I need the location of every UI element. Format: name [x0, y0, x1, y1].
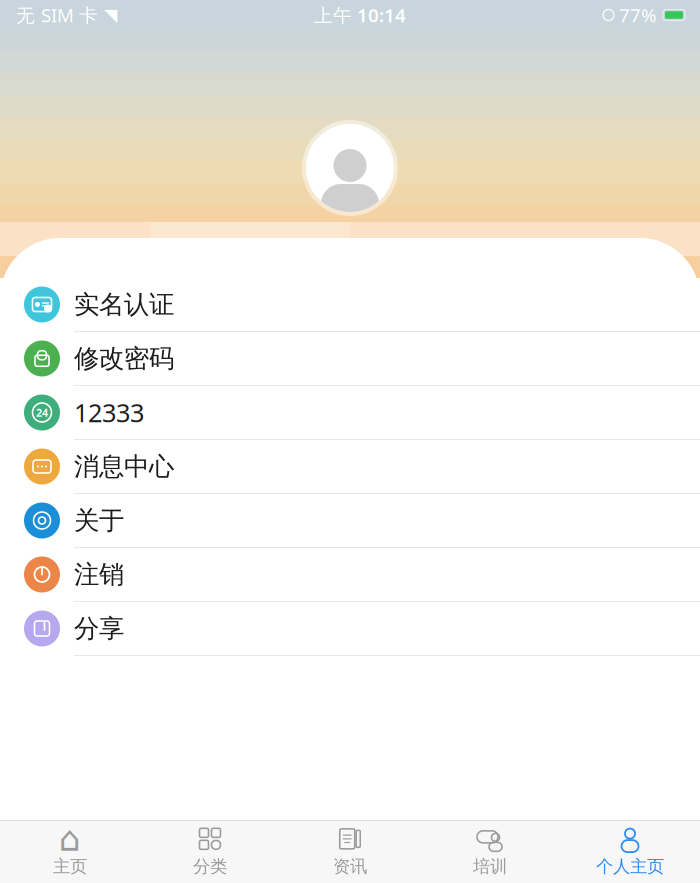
button[interactable]: 个人主页: [560, 821, 700, 883]
staticText: 实名认证: [74, 289, 174, 320]
staticText: 无 SIM 卡: [16, 3, 98, 27]
button[interactable]: 分类: [140, 821, 280, 883]
staticText: 上午 10:14: [314, 3, 406, 27]
button[interactable]: 实名认证: [0, 278, 700, 332]
staticText: ⌂: [59, 819, 81, 858]
staticText: ◥: [104, 5, 117, 25]
button[interactable]: 分享: [0, 602, 700, 656]
staticText: 分享: [74, 613, 124, 644]
staticText: 注销: [74, 559, 124, 590]
staticText: 个人主页: [596, 856, 664, 877]
staticText: 修改密码: [74, 343, 174, 374]
button[interactable]: 培训: [420, 821, 560, 883]
staticText: 资讯: [333, 856, 367, 877]
staticText: 消息中心: [74, 451, 174, 482]
staticText: 关于: [74, 505, 124, 536]
button[interactable]: 资讯: [280, 821, 420, 883]
button[interactable]: 关于: [0, 494, 700, 548]
button[interactable]: 修改密码: [0, 332, 700, 386]
staticText: 分类: [193, 856, 227, 877]
staticText: 77%: [619, 3, 657, 27]
staticText: 12333: [74, 396, 144, 429]
staticText: 培训: [473, 856, 507, 877]
staticText: 24: [36, 405, 48, 420]
button[interactable]: ⌂: [0, 821, 140, 883]
staticText: 主页: [53, 856, 87, 877]
button[interactable]: 24: [0, 386, 700, 440]
button[interactable]: 消息中心: [0, 440, 700, 494]
button[interactable]: 注销: [0, 548, 700, 602]
